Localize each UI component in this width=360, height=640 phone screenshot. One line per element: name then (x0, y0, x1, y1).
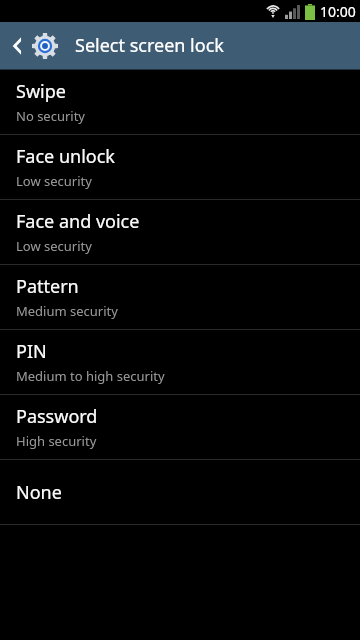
staticText: PIN (16, 339, 47, 364)
button[interactable]: Password (0, 395, 360, 459)
button[interactable]: Swipe (0, 70, 360, 134)
staticText: None (16, 480, 62, 505)
staticText: Face unlock (16, 144, 115, 169)
staticText: Medium to high security (16, 367, 165, 385)
staticText: Low security (16, 172, 92, 190)
staticText: Select screen lock (75, 33, 224, 58)
button[interactable]: Navigate up (0, 22, 63, 69)
staticText: Low security (16, 237, 92, 255)
staticText: Medium security (16, 302, 118, 320)
staticText: Face and voice (16, 209, 140, 234)
staticText: High security (16, 432, 97, 450)
staticText: Pattern (16, 274, 79, 299)
button[interactable]: PIN (0, 330, 360, 394)
button[interactable]: None (0, 460, 360, 524)
staticText: 10:00 (320, 2, 356, 21)
staticText: Password (16, 404, 98, 429)
staticText: No security (16, 107, 86, 125)
button[interactable]: Face unlock (0, 135, 360, 199)
staticText: Swipe (16, 79, 66, 104)
button[interactable]: Pattern (0, 265, 360, 329)
button[interactable]: Face and voice (0, 200, 360, 264)
